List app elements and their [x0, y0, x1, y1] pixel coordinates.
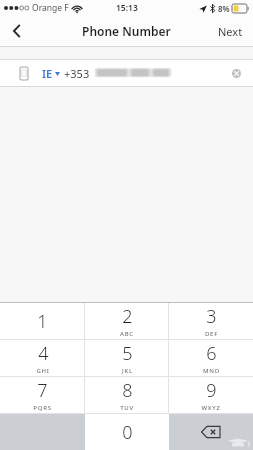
button[interactable]: 0	[85, 414, 169, 450]
staticText: Next	[218, 24, 243, 39]
staticText: 8	[122, 378, 133, 403]
staticText: 8%	[218, 3, 230, 14]
staticText: 9	[206, 378, 217, 403]
button[interactable]: Backspace	[169, 414, 253, 450]
button[interactable]: IE	[0, 60, 253, 86]
staticText: TUV	[120, 404, 134, 412]
staticText: WXYZ	[201, 404, 221, 412]
staticText: 15:13	[116, 2, 138, 14]
staticText: 7	[37, 378, 48, 403]
staticText: GHI	[36, 367, 50, 375]
staticText: 5	[122, 341, 133, 366]
staticText: 4	[38, 341, 49, 366]
staticText: MNO	[203, 367, 220, 375]
staticText: 2	[122, 304, 133, 329]
button[interactable]: Next	[208, 16, 253, 46]
button[interactable]: 4	[0, 340, 85, 376]
button[interactable]: Clear	[225, 62, 247, 84]
staticText: PQRS	[33, 404, 52, 412]
staticText: Phone Number	[82, 23, 171, 39]
staticText: 1	[37, 309, 48, 334]
button[interactable]: 3	[169, 303, 253, 339]
staticText: 6	[206, 341, 217, 366]
staticText: ABC	[120, 330, 134, 338]
staticText: +353	[64, 66, 90, 81]
button[interactable]: 5	[85, 340, 169, 376]
staticText: DEF	[205, 330, 218, 338]
staticText: IE	[42, 66, 53, 81]
staticText: 0	[122, 420, 133, 445]
button[interactable]: 9	[169, 377, 253, 413]
button[interactable]: 6	[169, 340, 253, 376]
staticText: 3	[206, 304, 217, 329]
button[interactable]: 8	[85, 377, 169, 413]
button[interactable]: 1	[0, 303, 85, 339]
button[interactable]: 2	[85, 303, 169, 339]
staticText: JKL	[122, 367, 133, 375]
button[interactable]: Back	[0, 16, 34, 46]
button[interactable]: 7	[0, 377, 85, 413]
staticText: Orange F	[32, 2, 69, 14]
